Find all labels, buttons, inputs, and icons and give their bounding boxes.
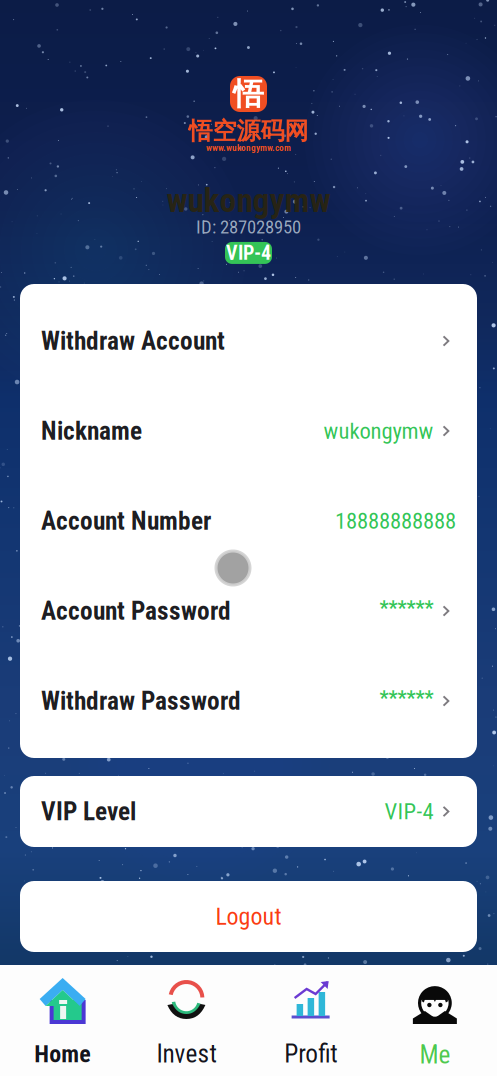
staticText: wukongymw	[323, 418, 433, 444]
staticText: VIP-4	[384, 798, 433, 825]
staticText: www.wukongymw.com	[206, 142, 291, 153]
staticText: VIP Level	[41, 797, 136, 826]
staticText: Profit	[284, 1039, 337, 1069]
button[interactable]: VIP Level	[20, 776, 477, 847]
button[interactable]: Profit	[248, 965, 373, 1076]
button[interactable]: Account Password	[20, 566, 477, 656]
staticText: VIP-4	[226, 241, 271, 265]
staticText: Me	[419, 1040, 450, 1070]
staticText: Home	[34, 1040, 90, 1068]
staticText: Nickname	[41, 416, 142, 446]
staticText: 悟空源码网	[188, 116, 308, 146]
button[interactable]: Logout	[20, 881, 477, 952]
staticText: Logout	[215, 902, 281, 930]
staticText: Invest	[156, 1039, 216, 1069]
staticText: 18888888888	[335, 508, 456, 534]
button[interactable]: Nickname	[20, 386, 477, 476]
button[interactable]: Withdraw Account	[20, 296, 477, 386]
staticText: wukongymw	[166, 181, 330, 220]
staticText: Account Number	[41, 506, 211, 536]
button[interactable]: Invest	[124, 965, 248, 1076]
button[interactable]: Me	[373, 965, 497, 1076]
staticText: Account Password	[41, 596, 231, 626]
button[interactable]: Home	[0, 965, 124, 1076]
button[interactable]: Withdraw Password	[20, 656, 477, 746]
staticText: Withdraw Password	[41, 686, 241, 716]
staticText: ******	[379, 687, 433, 710]
staticText: ID: 287028950	[196, 216, 301, 238]
staticText: 悟	[233, 75, 264, 113]
button[interactable]: Account Number	[20, 476, 477, 566]
staticText: Withdraw Account	[41, 326, 225, 356]
staticText: ******	[379, 597, 433, 620]
